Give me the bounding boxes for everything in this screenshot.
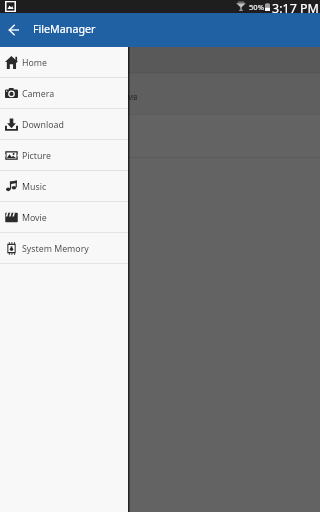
staticText: Internal Storage [10,54,79,66]
staticText: 4.00 MB [113,93,138,102]
staticText: Picture [22,150,51,162]
staticText: 50% [249,2,264,12]
staticText: Music [22,181,47,193]
staticText: Camera [22,88,55,100]
button[interactable]: System Memory [0,233,128,263]
staticText: Movie [22,212,47,224]
staticText: System Memory [22,243,89,255]
button[interactable]: Picture [0,140,128,170]
button[interactable]: Movie [0,202,128,232]
staticText: Android [42,81,80,95]
staticText: FileManager [33,22,96,37]
staticText: Download [22,119,64,131]
button[interactable]: Download [0,109,128,139]
staticText: 3:17 PM [272,0,319,13]
button[interactable]: Camera [0,78,128,108]
button[interactable]: Internal Storage [0,47,320,72]
button[interactable]: Music [0,171,128,201]
staticText: DCIM [42,123,69,137]
button[interactable]: Android [0,74,320,114]
staticText: Home [22,57,48,69]
button[interactable]: DCIM [0,115,320,157]
button[interactable]: Home [0,47,128,77]
button[interactable]: Back [0,13,28,47]
